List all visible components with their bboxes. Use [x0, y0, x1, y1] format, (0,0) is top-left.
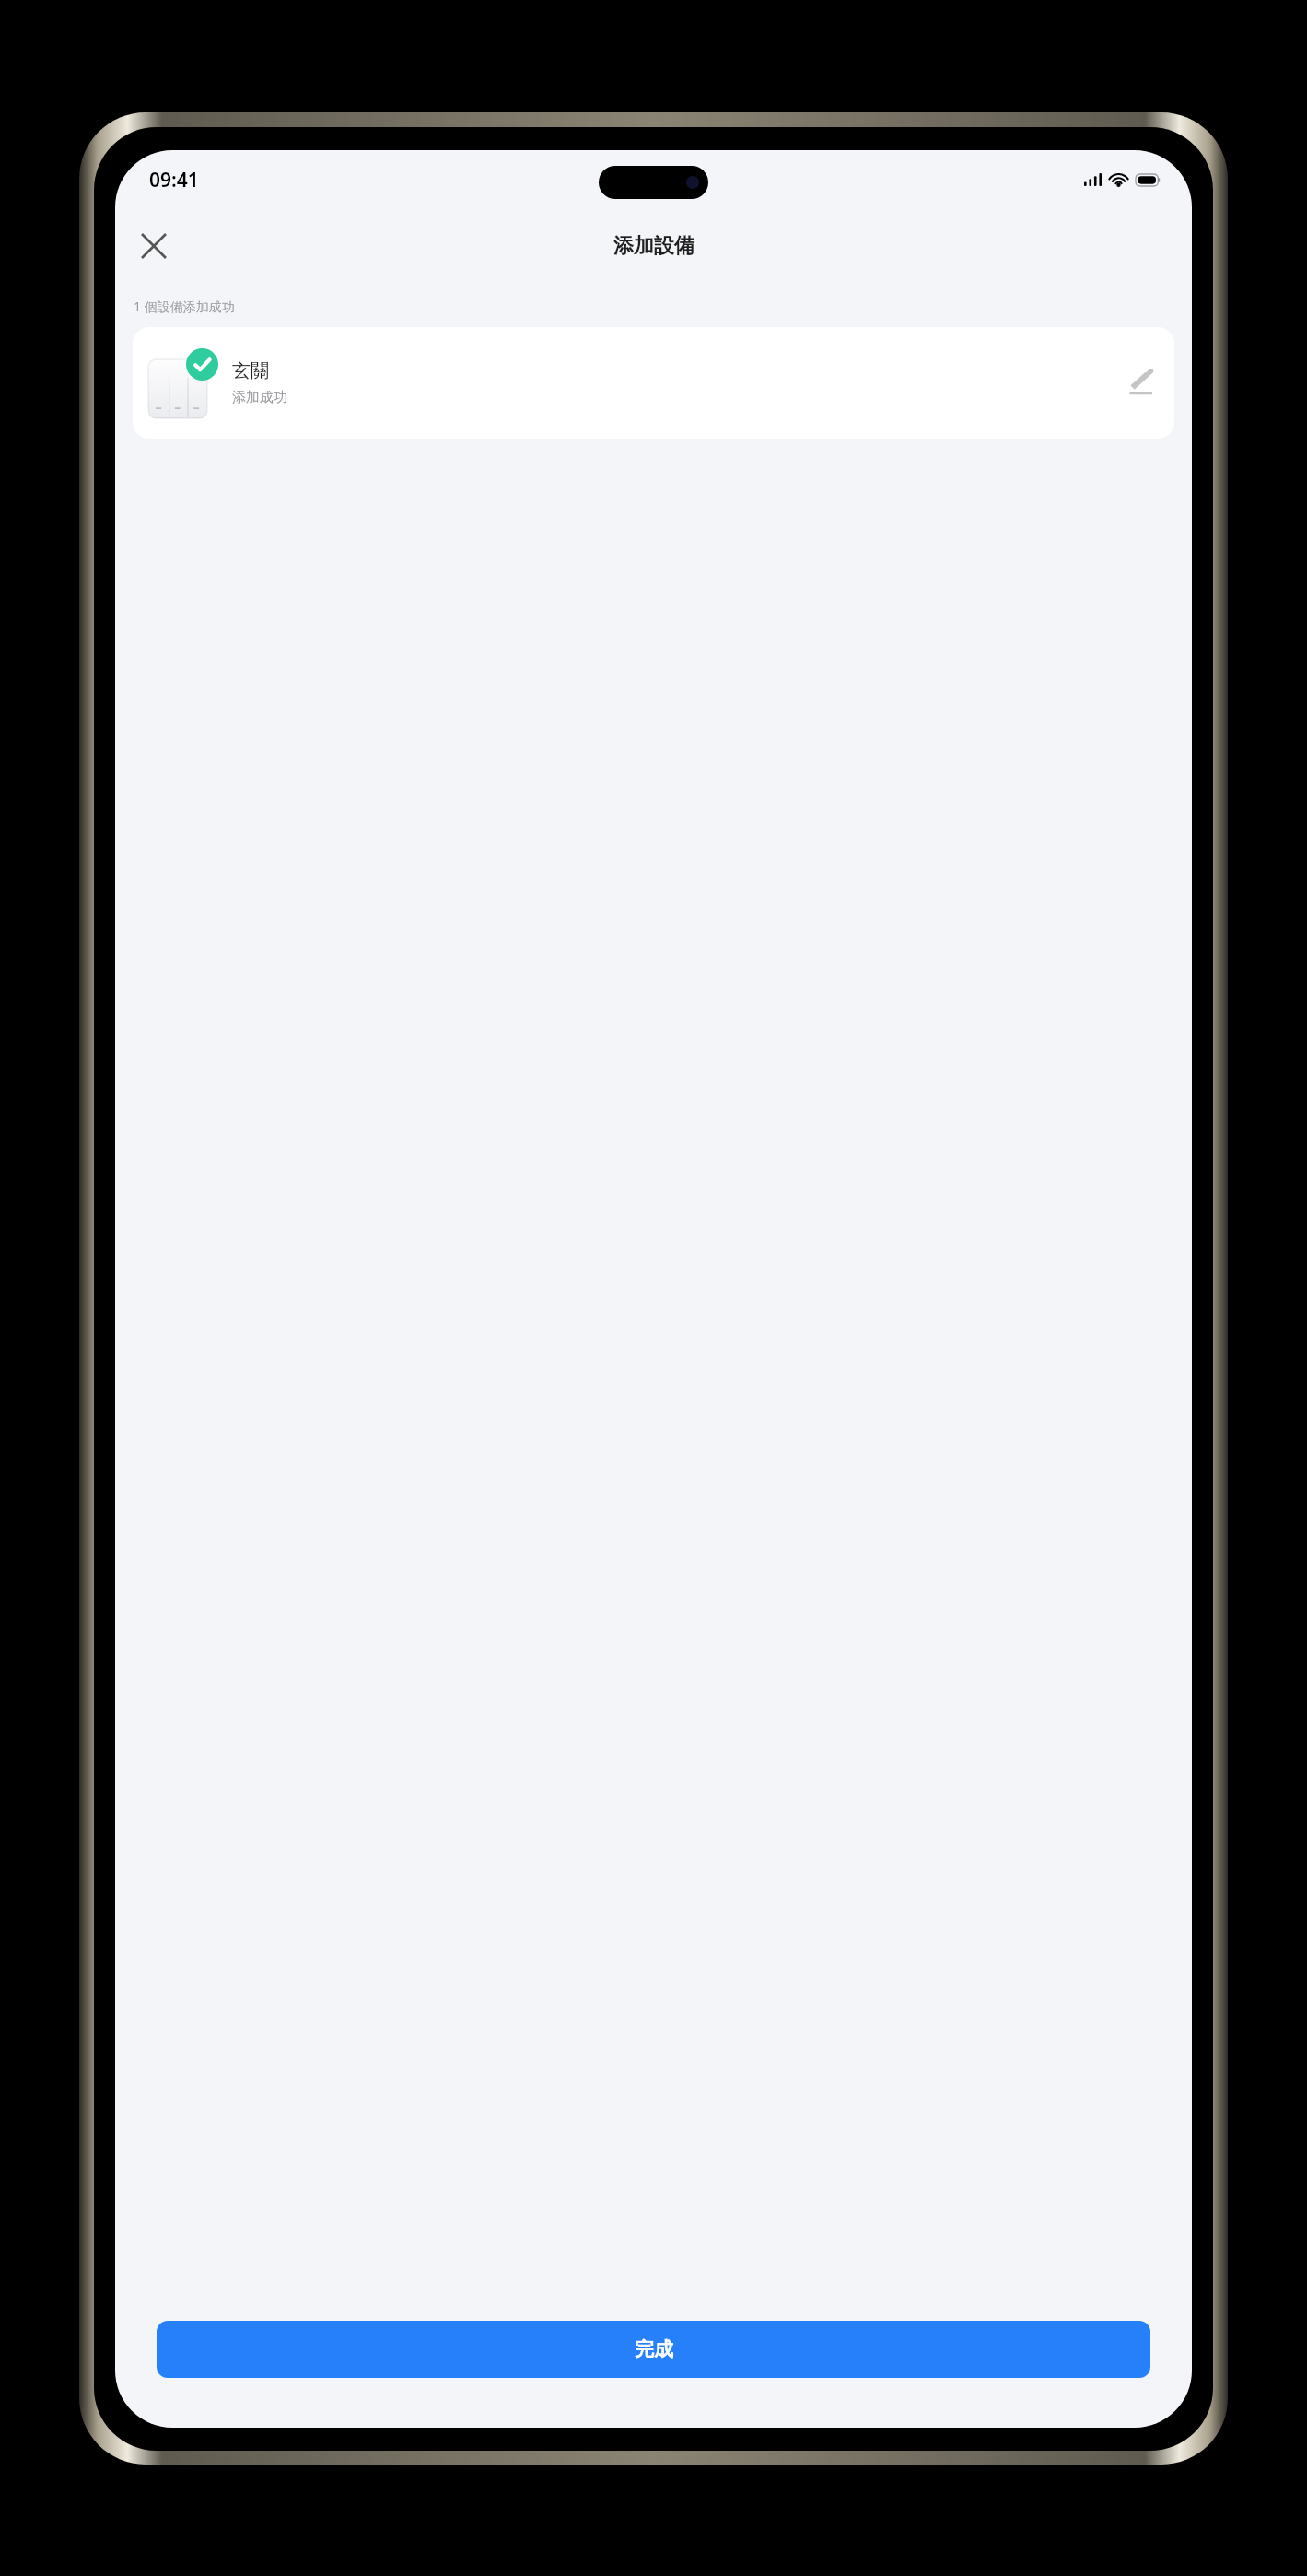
button[interactable]: 完成 [157, 2321, 1150, 2378]
button[interactable]: Rename device [1119, 362, 1161, 404]
staticText: 09:41 [149, 167, 199, 193]
button[interactable]: 玄關 [133, 327, 1174, 439]
staticText: 1 個設備添加成功 [134, 298, 235, 315]
staticText: 添加成功 [232, 389, 287, 406]
staticText: 完成 [635, 2337, 673, 2361]
staticText: 玄關 [232, 359, 269, 382]
button[interactable]: Close [128, 220, 180, 272]
staticText: 添加設備 [613, 233, 694, 259]
